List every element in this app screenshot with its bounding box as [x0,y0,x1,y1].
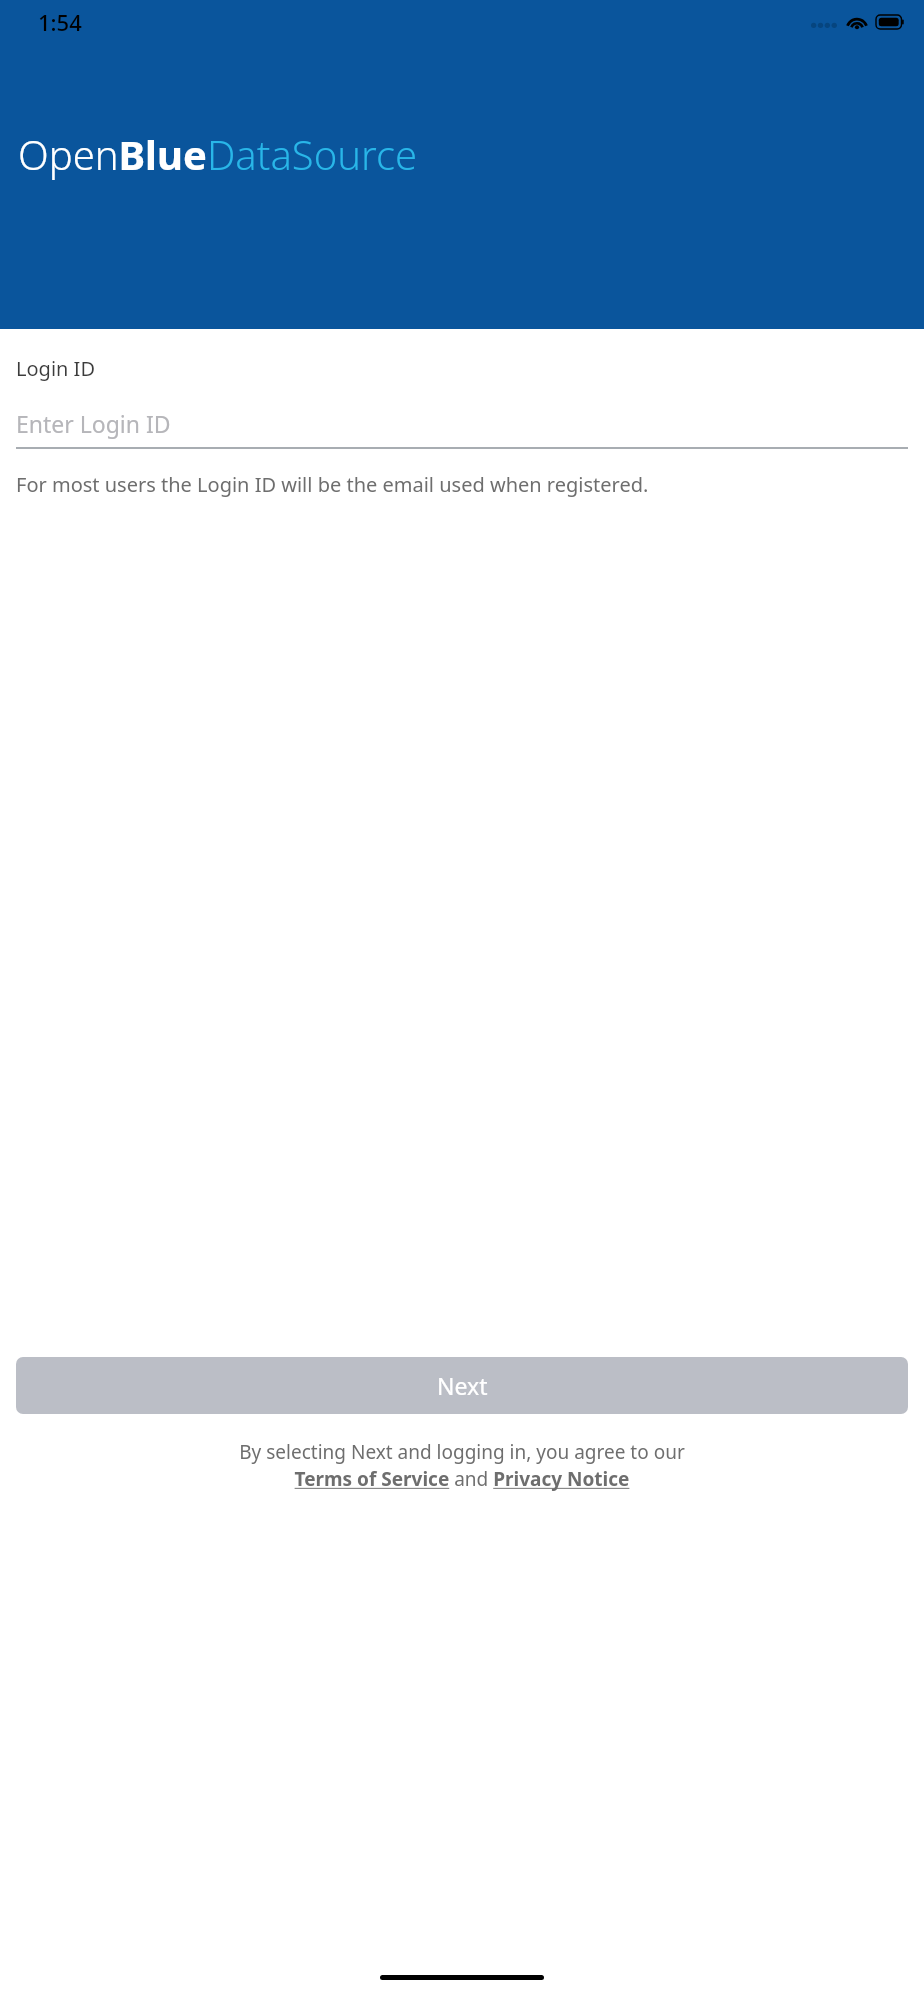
button[interactable]: By selecting Next and logging in, you ag… [24,1439,900,1492]
staticText: Enter Login ID [16,408,171,439]
staticText: OpenBlueDataSource [18,127,418,181]
staticText: 1:54 [38,7,82,37]
staticText: Next [437,1370,488,1401]
staticText: Login ID [16,355,95,382]
button[interactable]: Enter Login ID [16,399,908,447]
button[interactable]: Next [16,1357,908,1414]
staticText: For most users the Login ID will be the … [16,471,649,498]
